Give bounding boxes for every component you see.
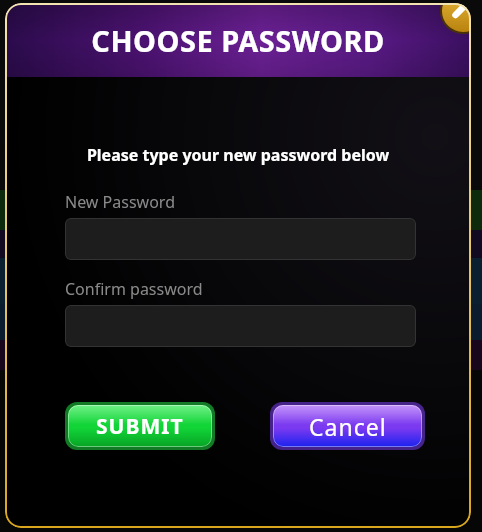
button[interactable] [65, 305, 416, 347]
button[interactable]: Close [441, 3, 471, 33]
staticText: SUBMIT [96, 412, 184, 441]
staticText: Confirm password [65, 278, 203, 300]
button[interactable]: Cancel [273, 405, 422, 447]
button[interactable] [65, 218, 416, 260]
staticText: Please type your new password below [5, 144, 471, 166]
staticText: New Password [65, 191, 175, 213]
button[interactable]: SUBMIT [68, 405, 212, 447]
staticText: CHOOSE PASSWORD [91, 21, 385, 60]
staticText: Cancel [309, 411, 387, 442]
